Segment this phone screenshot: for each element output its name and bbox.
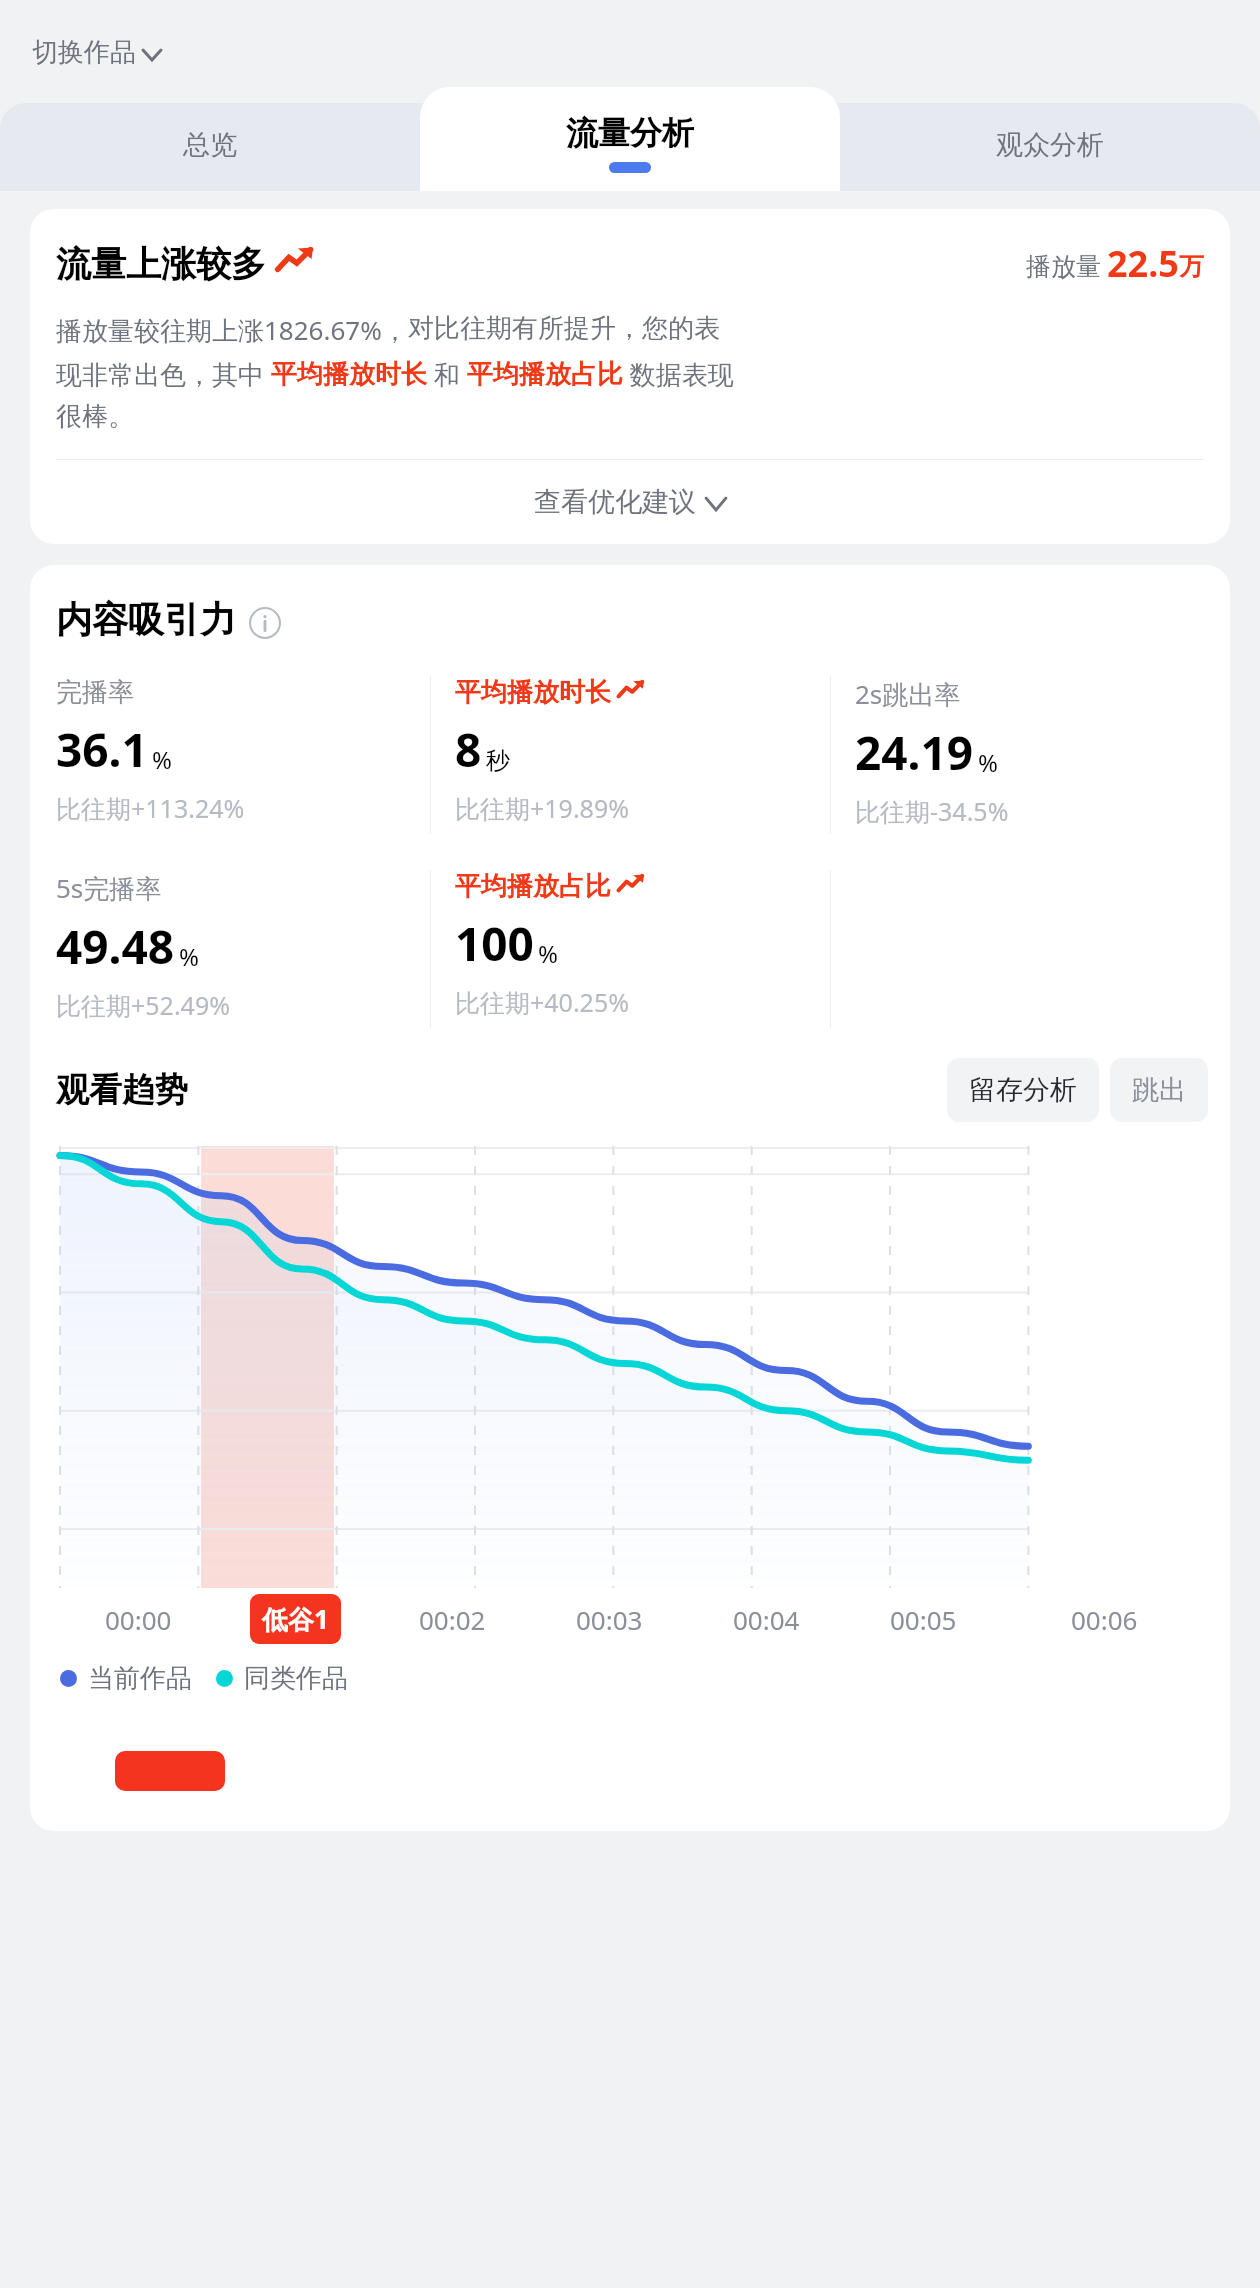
staticText: 完播率: [56, 676, 134, 709]
staticText: 播放量: [1026, 251, 1101, 282]
button[interactable]: 内容吸引力: [56, 597, 281, 642]
staticText: 8: [455, 718, 482, 781]
staticText: 留存分析: [969, 1073, 1077, 1107]
staticText: 00:04: [733, 1602, 800, 1637]
staticText: %: [152, 743, 172, 776]
staticText: 流量上涨较多: [56, 242, 266, 286]
button[interactable]: 切换作品: [28, 30, 165, 75]
button[interactable]: 低谷1: [250, 1594, 341, 1644]
staticText: 100: [455, 912, 534, 975]
staticText: 比往期+52.49%: [56, 988, 230, 1022]
staticText: 现非常出色，其中: [56, 356, 271, 392]
staticText: 平均播放时长: [455, 676, 611, 709]
staticText: 流量分析: [566, 113, 694, 153]
staticText: 切换作品: [32, 36, 136, 69]
staticText: 万: [1179, 251, 1204, 282]
staticText: 观看趋势: [56, 1069, 188, 1111]
button[interactable]: 留存分析: [947, 1058, 1099, 1122]
button[interactable]: 跳出: [1110, 1058, 1208, 1122]
staticText: 观众分析: [996, 128, 1104, 162]
button[interactable]: 完播率: [30, 676, 430, 834]
button[interactable]: 平均播放时长: [431, 676, 830, 834]
staticText: %: [978, 746, 998, 779]
button[interactable]: 观众分析: [840, 75, 1260, 191]
staticText: 2s跳出率: [855, 676, 961, 712]
staticText: 播放量较往期上涨1826.67%，: [56, 312, 408, 348]
staticText: 和: [427, 356, 467, 392]
staticText: 36.1: [56, 718, 148, 781]
staticText: 秒: [486, 746, 510, 776]
staticText: 同类作品: [244, 1662, 348, 1695]
staticText: 您的表: [642, 312, 720, 345]
staticText: 内容吸引力: [56, 597, 236, 642]
button[interactable]: 流量分析: [420, 75, 840, 191]
staticText: 总览: [183, 128, 237, 162]
staticText: 00:02: [419, 1602, 486, 1637]
staticText: 5s完播率: [56, 870, 162, 906]
button[interactable]: 2s跳出率: [831, 676, 1230, 834]
button[interactable]: 5s完播率: [30, 870, 430, 1028]
staticText: 00:03: [576, 1602, 643, 1637]
staticText: 00:05: [890, 1602, 957, 1637]
staticText: 00:06: [1071, 1602, 1138, 1637]
button[interactable]: 平均播放占比: [431, 870, 830, 1028]
staticText: 比往期+40.25%: [455, 985, 629, 1019]
staticText: 很棒。: [56, 400, 134, 433]
staticText: 00:00: [105, 1602, 172, 1637]
staticText: 查看优化建议: [534, 485, 696, 519]
staticText: 比往期+19.89%: [455, 791, 629, 825]
staticText: 平均播放占比: [455, 870, 611, 903]
staticText: 24.19: [855, 721, 974, 784]
staticText: 当前作品: [88, 1662, 192, 1695]
other: 说明: [249, 607, 281, 639]
staticText: 数据表现: [623, 356, 734, 392]
button[interactable]: 查看优化建议: [30, 460, 1230, 544]
staticText: 比往期-34.5%: [855, 794, 1009, 828]
staticText: 低谷1: [262, 1601, 329, 1637]
staticText: %: [179, 940, 199, 973]
staticText: 对比往期有所提升，: [408, 312, 642, 345]
button[interactable]: 标签: [115, 1751, 225, 1791]
staticText: 比往期+113.24%: [56, 791, 245, 825]
button[interactable]: 总览: [0, 75, 420, 191]
staticText: 平均播放占比: [467, 358, 623, 391]
staticText: %: [538, 937, 558, 970]
staticText: 49.48: [56, 915, 175, 978]
staticText: 22.5: [1107, 239, 1179, 288]
staticText: 平均播放时长: [271, 358, 427, 391]
staticText: 跳出: [1132, 1073, 1186, 1107]
